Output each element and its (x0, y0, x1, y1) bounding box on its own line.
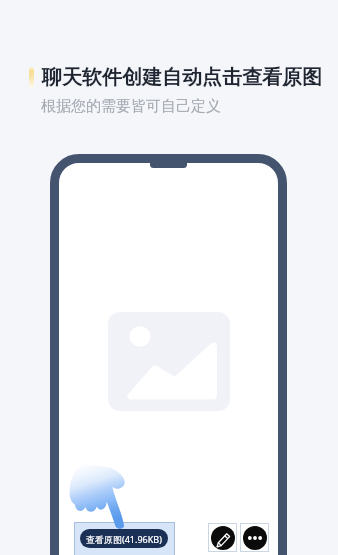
button[interactable]: Edit (208, 523, 237, 552)
button[interactable]: More options (240, 523, 269, 552)
button[interactable]: 查看原图(41.96KB) (80, 529, 168, 548)
staticText: 根据您的需要皆可自己定义 (41, 97, 221, 116)
staticText: 查看原图(41.96KB) (86, 533, 162, 545)
staticText: 聊天软件创建自动点击查看原图 (42, 65, 322, 90)
